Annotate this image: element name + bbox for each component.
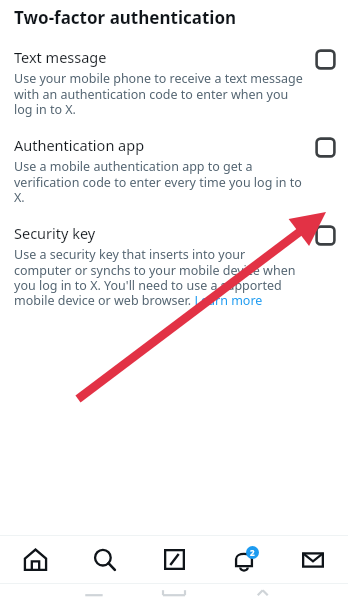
button[interactable]: Text message [0, 45, 348, 119]
button[interactable]: Search [77, 536, 131, 583]
button[interactable]: Text message [315, 49, 336, 70]
staticText: Text message [14, 47, 107, 67]
staticText: Authentication app [14, 135, 145, 155]
button[interactable]: Messages [286, 536, 340, 583]
staticText: Use your mobile phone to receive a text … [14, 70, 305, 117]
button[interactable]: Home [8, 536, 62, 583]
staticText: 2 [250, 547, 255, 558]
staticText: Security key [14, 223, 96, 243]
button[interactable]: Notifications [217, 536, 271, 583]
button[interactable]: Grok [147, 536, 201, 583]
button[interactable]: Authentication app [315, 137, 336, 158]
staticText: Two-factor authentication [14, 6, 237, 29]
button[interactable]: Security key [0, 221, 348, 310]
staticText: Use a security key that inserts into you… [14, 246, 305, 308]
staticText: Use a mobile authentication app to get a… [14, 158, 305, 205]
button[interactable]: Authentication app [0, 133, 348, 207]
button[interactable]: Security key [315, 225, 336, 246]
